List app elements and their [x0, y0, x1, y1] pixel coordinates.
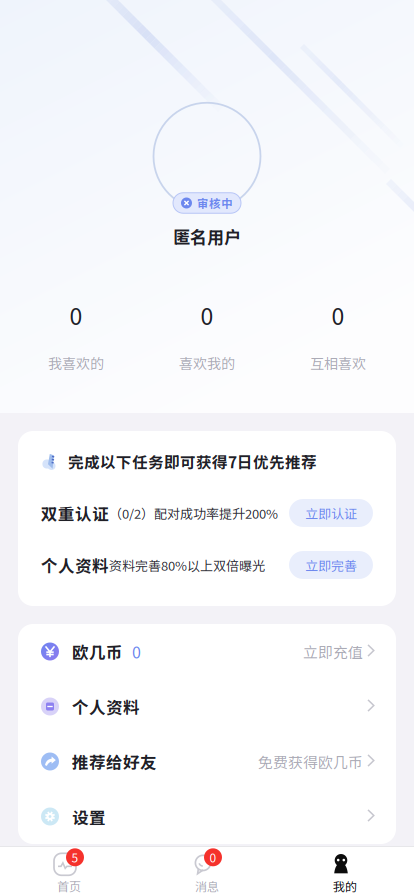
staticText: 个人资料	[72, 695, 140, 718]
button[interactable]: 0	[141, 303, 272, 372]
staticText: 喜欢我的	[179, 353, 235, 373]
staticText: 推荐给好友	[72, 750, 157, 773]
staticText: 我的	[333, 877, 357, 895]
button[interactable]: 推荐给好友	[41, 734, 376, 789]
button[interactable]: 欧几币	[41, 624, 376, 679]
staticText: 0	[200, 298, 213, 332]
button[interactable]: 我的	[276, 846, 414, 896]
staticText: 完成以下任务即可获得7日优先推荐	[68, 450, 317, 473]
button[interactable]: 设置	[41, 789, 376, 844]
staticText: 双重认证	[41, 501, 109, 525]
staticText: 0	[209, 849, 216, 866]
staticText: 0	[132, 640, 141, 663]
button[interactable]: 5	[0, 846, 138, 896]
staticText: （0/2）配对成功率提升200%	[109, 504, 278, 522]
button[interactable]: 0	[138, 846, 276, 896]
staticText: 欧几币	[72, 640, 123, 663]
staticText: 互相喜欢	[310, 353, 366, 373]
staticText: 我喜欢的	[48, 353, 104, 373]
button[interactable]: 立即完善	[289, 551, 373, 579]
staticText: 资料完善80%以上双倍曝光	[109, 556, 265, 574]
staticText: 消息	[195, 877, 219, 895]
button[interactable]: 0	[10, 303, 141, 372]
staticText: 审核中	[197, 195, 233, 211]
staticText: 立即充值	[303, 641, 363, 662]
staticText: 首页	[57, 877, 81, 895]
staticText: 5	[71, 849, 78, 866]
button[interactable]: 0	[272, 303, 403, 372]
staticText: 匿名用户	[173, 224, 241, 248]
staticText: 立即完善	[305, 556, 357, 574]
staticText: 0	[331, 298, 344, 332]
staticText: 立即认证	[305, 504, 357, 522]
button[interactable]: 立即认证	[289, 499, 373, 527]
staticText: 0	[69, 298, 82, 332]
staticText: 免费获得欧几币	[258, 751, 363, 772]
staticText: 设置	[72, 805, 106, 828]
staticText: 个人资料	[41, 553, 109, 577]
button[interactable]: 个人资料	[41, 679, 376, 734]
